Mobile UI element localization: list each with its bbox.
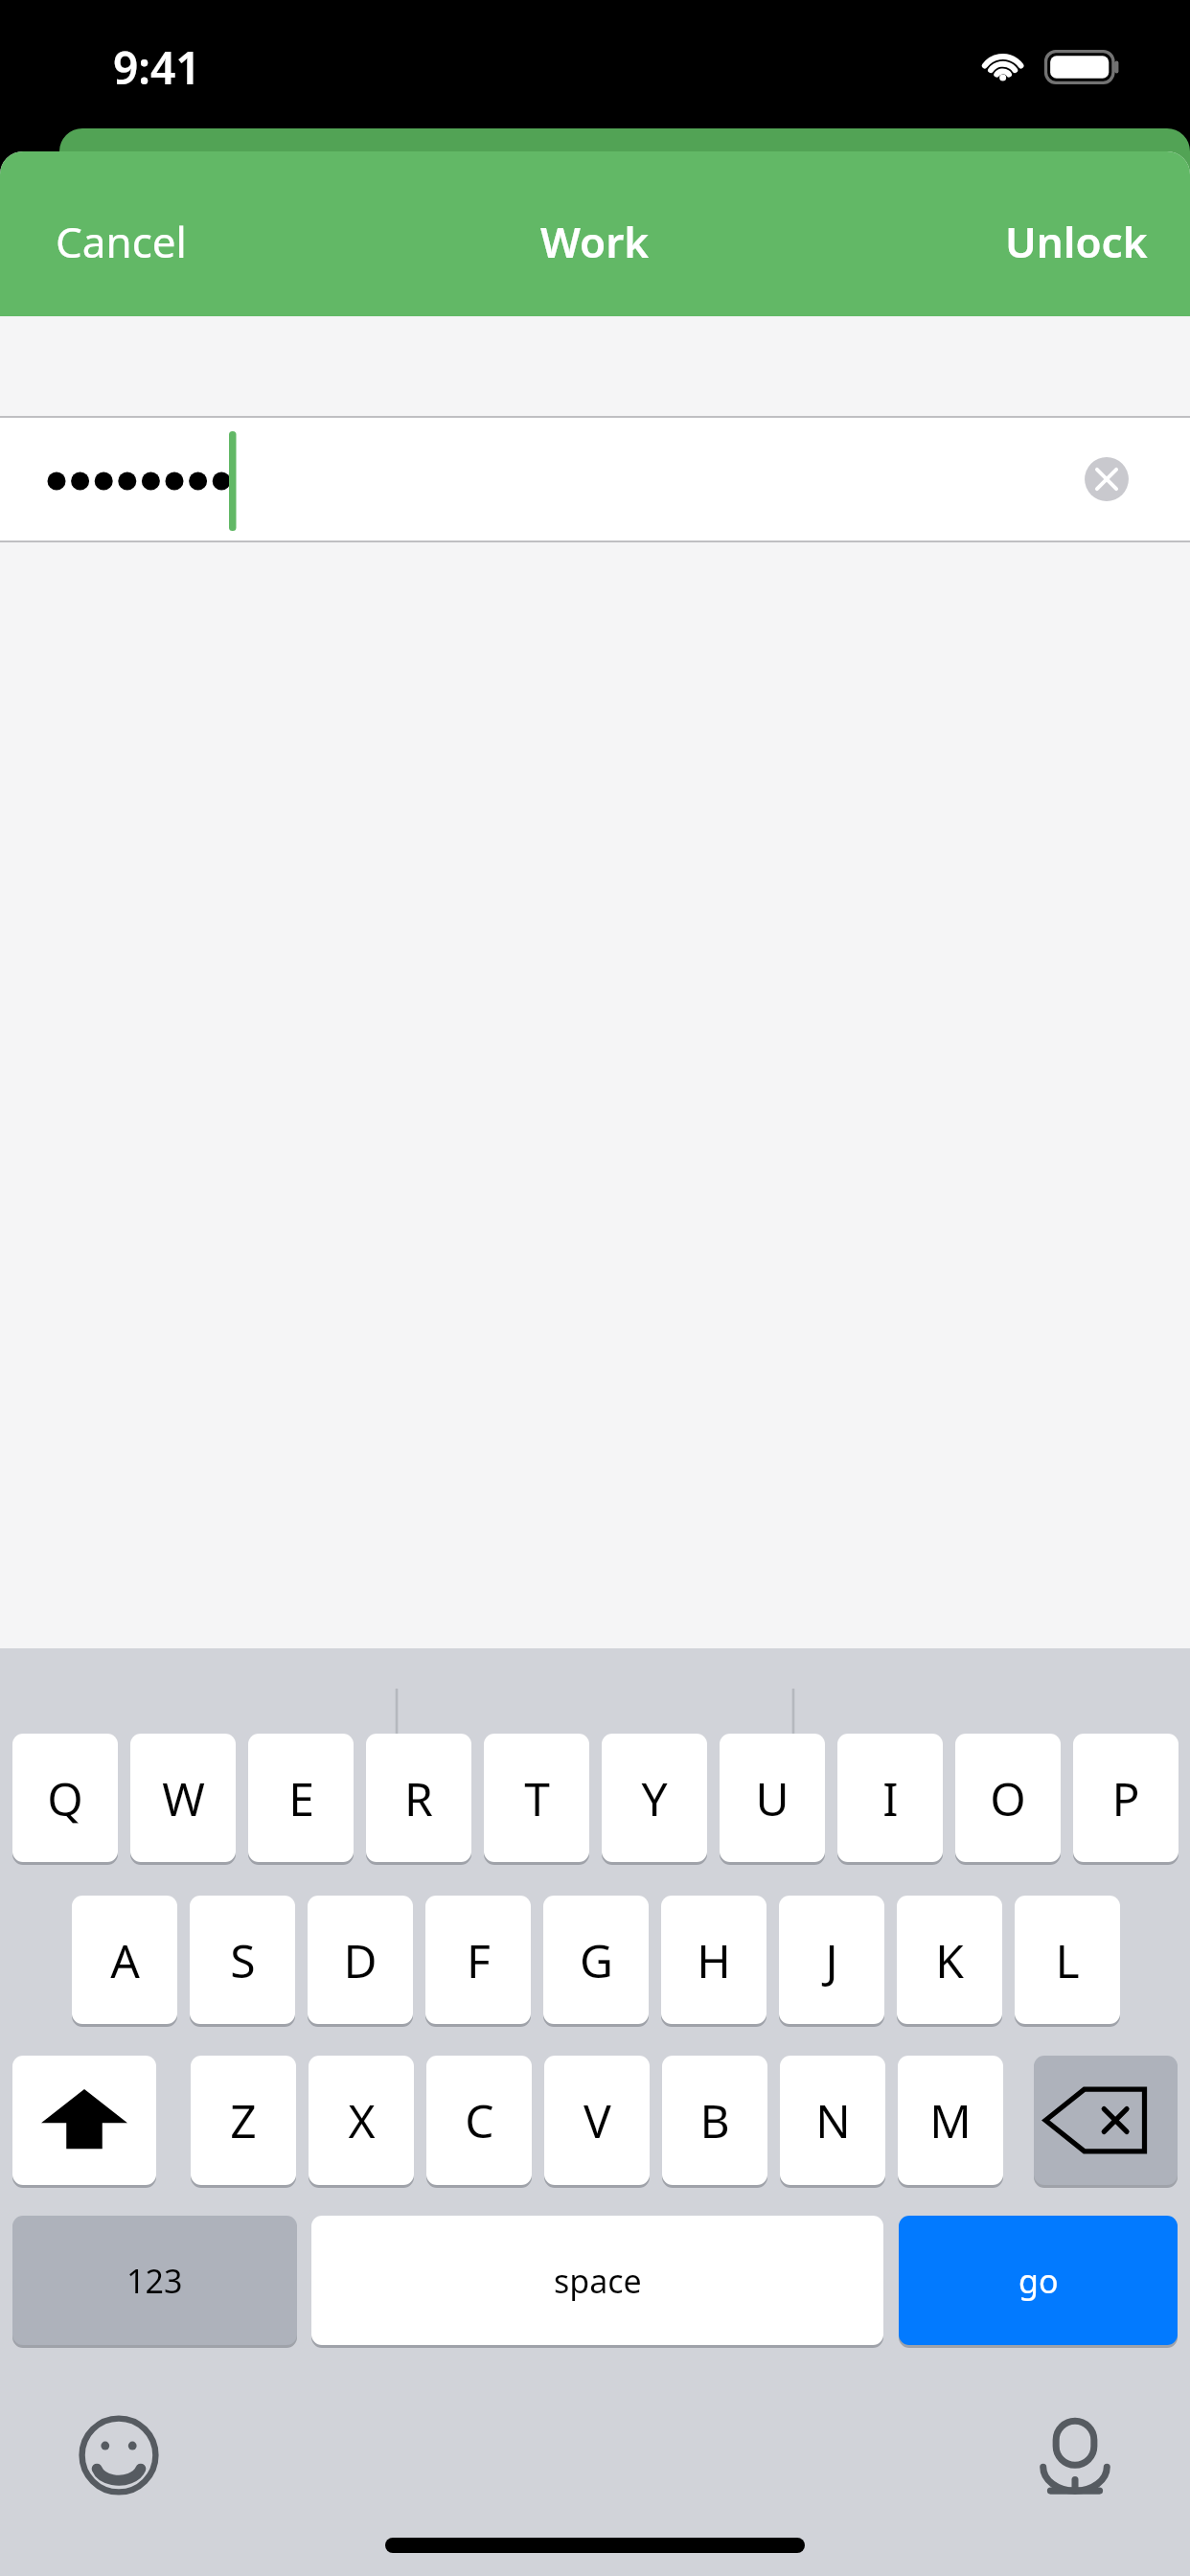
button[interactable]: M: [898, 2056, 1003, 2185]
staticText: C: [465, 2089, 494, 2151]
staticText: U: [755, 1767, 790, 1829]
button[interactable]: G: [543, 1896, 649, 2024]
staticText: space: [554, 2259, 642, 2303]
button[interactable]: Y: [602, 1734, 707, 1862]
button[interactable]: Q: [12, 1734, 118, 1862]
staticText: 9:41: [113, 37, 201, 98]
button[interactable]: S: [190, 1896, 295, 2024]
staticText: H: [697, 1929, 731, 1991]
staticText: Unlock: [1005, 213, 1148, 270]
button[interactable]: V: [544, 2056, 650, 2185]
staticText: go: [1018, 2259, 1059, 2303]
staticText: Y: [641, 1767, 668, 1829]
staticText: T: [524, 1767, 550, 1829]
button[interactable]: O: [955, 1734, 1061, 1862]
button[interactable]: R: [366, 1734, 471, 1862]
button[interactable]: Unlock: [963, 186, 1190, 297]
button[interactable]: Dictation: [1014, 2394, 1136, 2517]
staticText: E: [288, 1767, 314, 1829]
staticText: 123: [126, 2259, 183, 2303]
button[interactable]: K: [897, 1896, 1002, 2024]
staticText: K: [935, 1929, 964, 1991]
staticText: F: [467, 1929, 491, 1991]
button[interactable]: U: [720, 1734, 825, 1862]
staticText: X: [348, 2089, 376, 2151]
button[interactable]: B: [662, 2056, 767, 2185]
button[interactable]: Clear text: [0, 418, 1190, 540]
button[interactable]: Z: [191, 2056, 296, 2185]
staticText: I: [882, 1767, 899, 1829]
button[interactable]: Go: [899, 2216, 1178, 2345]
button[interactable]: Shift: [12, 2056, 156, 2185]
staticText: N: [815, 2089, 851, 2151]
button[interactable]: P: [1073, 1734, 1179, 1862]
button[interactable]: A: [72, 1896, 177, 2024]
staticText: R: [404, 1767, 433, 1829]
staticText: S: [230, 1929, 256, 1991]
button[interactable]: Numbers: [12, 2216, 297, 2345]
staticText: D: [343, 1929, 378, 1991]
staticText: M: [929, 2089, 972, 2151]
button[interactable]: W: [130, 1734, 236, 1862]
button[interactable]: I: [837, 1734, 943, 1862]
button[interactable]: Backspace: [1034, 2056, 1178, 2185]
button[interactable]: T: [484, 1734, 589, 1862]
button[interactable]: E: [248, 1734, 354, 1862]
staticText: O: [990, 1767, 1026, 1829]
staticText: L: [1055, 1929, 1080, 1991]
button[interactable]: H: [661, 1896, 767, 2024]
button[interactable]: Clear text: [1077, 449, 1136, 509]
staticText: P: [1111, 1767, 1140, 1829]
staticText: Cancel: [56, 213, 187, 270]
button[interactable]: C: [426, 2056, 532, 2185]
staticText: A: [110, 1929, 140, 1991]
button[interactable]: Emoji: [57, 2394, 180, 2517]
staticText: V: [584, 2089, 611, 2151]
staticText: J: [825, 1929, 838, 1991]
staticText: W: [162, 1767, 205, 1829]
button[interactable]: X: [309, 2056, 414, 2185]
staticText: G: [580, 1929, 613, 1991]
button[interactable]: L: [1015, 1896, 1120, 2024]
staticText: Q: [47, 1767, 83, 1829]
button[interactable]: Cancel: [0, 186, 242, 297]
staticText: Z: [230, 2089, 257, 2151]
button[interactable]: N: [780, 2056, 885, 2185]
button[interactable]: D: [308, 1896, 413, 2024]
staticText: Work: [540, 213, 650, 270]
button[interactable]: J: [779, 1896, 884, 2024]
button[interactable]: Space: [311, 2216, 883, 2345]
button[interactable]: F: [425, 1896, 531, 2024]
button[interactable]: Work: [502, 186, 688, 297]
staticText: B: [699, 2089, 730, 2151]
